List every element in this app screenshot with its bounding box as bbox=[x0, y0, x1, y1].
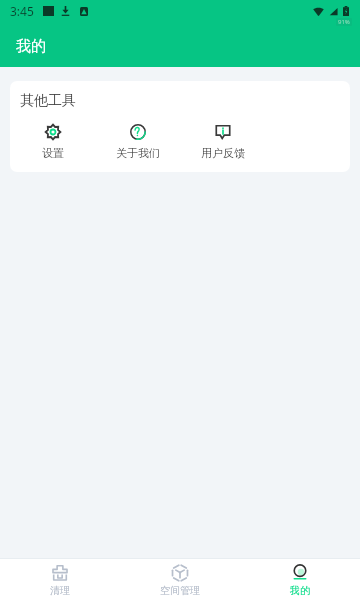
button[interactable]: 设置 bbox=[10, 124, 95, 164]
other: Battery charging bbox=[343, 6, 349, 16]
button[interactable]: 空间管理 bbox=[120, 559, 240, 600]
staticText: 空间管理 bbox=[160, 584, 200, 597]
staticText: 我的 bbox=[16, 37, 46, 56]
button[interactable]: 关于我们 bbox=[95, 124, 180, 164]
other: Wi-Fi bbox=[313, 7, 324, 16]
button[interactable]: 用户反馈 bbox=[180, 124, 265, 164]
button[interactable]: 我的 bbox=[240, 559, 360, 600]
staticText: 用户反馈 bbox=[201, 146, 245, 160]
staticText: 91% bbox=[338, 18, 350, 26]
staticText: 我的 bbox=[290, 584, 310, 597]
staticText: 关于我们 bbox=[116, 146, 160, 160]
staticText: 设置 bbox=[42, 146, 64, 160]
staticText: 其他工具 bbox=[20, 92, 76, 110]
button[interactable]: 清理 bbox=[0, 559, 120, 600]
other: Mobile signal bbox=[329, 7, 338, 16]
staticText: 3:45 bbox=[10, 3, 34, 19]
staticText: 清理 bbox=[50, 584, 70, 597]
